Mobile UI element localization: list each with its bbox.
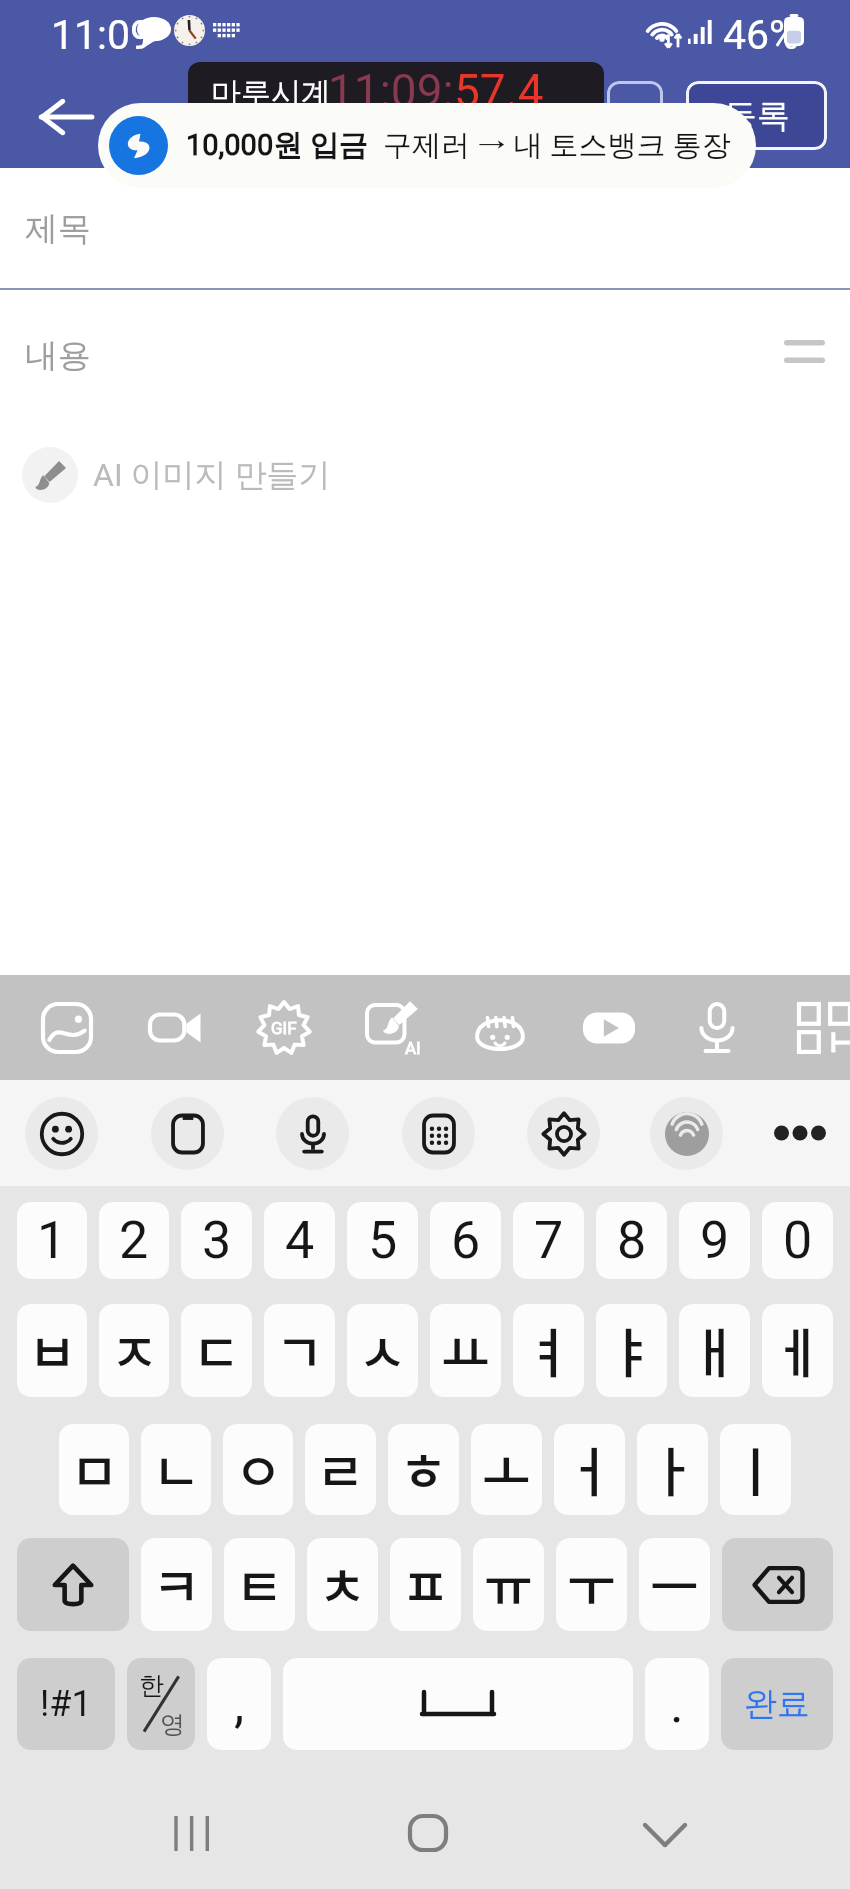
staticText: ㄷ bbox=[192, 1312, 241, 1389]
button[interactable]: ㄱ bbox=[264, 1304, 335, 1397]
button[interactable]: Spotify bbox=[632, 1080, 740, 1186]
staticText: 4 bbox=[285, 1210, 315, 1271]
staticText: ㅗ bbox=[482, 1431, 531, 1508]
button[interactable]: 1 bbox=[17, 1202, 87, 1279]
button[interactable]: Recent apps bbox=[131, 1788, 251, 1878]
button[interactable]: . bbox=[645, 1658, 709, 1750]
staticText: ㅠ bbox=[484, 1546, 533, 1623]
button[interactable]: Emoji bbox=[7, 1080, 115, 1186]
button[interactable]: Clipboard bbox=[133, 1080, 241, 1186]
button[interactable]: ㅐ bbox=[679, 1304, 750, 1397]
button[interactable]: 2 bbox=[99, 1202, 169, 1279]
staticText: 제목 bbox=[25, 208, 91, 250]
button[interactable]: 등록 bbox=[686, 81, 827, 150]
staticText: 10,000원 입금 bbox=[186, 127, 368, 164]
button[interactable]: 4 bbox=[264, 1202, 335, 1279]
button[interactable]: , bbox=[207, 1658, 271, 1750]
staticText: ㄱ bbox=[275, 1312, 324, 1389]
button[interactable]: ㅑ bbox=[596, 1304, 667, 1397]
button[interactable]: ㅠ bbox=[473, 1538, 544, 1631]
staticText: ㅣ bbox=[731, 1431, 780, 1508]
button[interactable]: Menu bbox=[607, 81, 663, 150]
button[interactable]: ㅕ bbox=[513, 1304, 584, 1397]
button[interactable]: 6 bbox=[430, 1202, 501, 1279]
button[interactable]: 0 bbox=[762, 1202, 833, 1279]
button[interactable]: ㅋ bbox=[141, 1538, 212, 1631]
button[interactable]: ㅁ bbox=[59, 1424, 129, 1515]
button[interactable]: Voice input bbox=[258, 1080, 366, 1186]
button[interactable]: Voice bbox=[663, 975, 771, 1080]
staticText: 8 bbox=[617, 1210, 647, 1271]
button[interactable]: !#1 bbox=[17, 1658, 115, 1750]
button[interactable]: Keyboard layout bbox=[384, 1080, 492, 1186]
staticText: 46% bbox=[723, 11, 800, 59]
staticText: ㅊ bbox=[318, 1546, 367, 1623]
staticText: ㅑ bbox=[607, 1312, 656, 1389]
button[interactable]: ㅣ bbox=[720, 1424, 791, 1515]
staticText: ㅏ bbox=[648, 1431, 697, 1508]
button[interactable]: Sticker bbox=[446, 975, 554, 1080]
button[interactable]: ㅔ bbox=[762, 1304, 833, 1397]
button[interactable]: More options bbox=[746, 1080, 850, 1186]
button[interactable]: ㅈ bbox=[99, 1304, 169, 1397]
button[interactable]: Image bbox=[13, 975, 121, 1080]
button[interactable]: ㅏ bbox=[637, 1424, 708, 1515]
button[interactable]: 한 bbox=[127, 1658, 195, 1750]
staticText: ㅛ bbox=[441, 1312, 490, 1389]
button[interactable]: ㅎ bbox=[388, 1424, 459, 1515]
button[interactable]: ㄷ bbox=[181, 1304, 252, 1397]
button[interactable]: ㅓ bbox=[554, 1424, 625, 1515]
button[interactable]: Home bbox=[368, 1788, 488, 1878]
button[interactable]: Apps bbox=[771, 975, 850, 1080]
button[interactable]: 완료 bbox=[721, 1658, 833, 1750]
button[interactable]: YouTube bbox=[555, 975, 663, 1080]
button[interactable]: Space bbox=[283, 1658, 633, 1750]
button[interactable]: 3 bbox=[181, 1202, 252, 1279]
staticText: ㅎ bbox=[399, 1431, 448, 1508]
staticText: ㅍ bbox=[401, 1546, 450, 1623]
staticText: 11:09: bbox=[328, 64, 454, 118]
button[interactable]: Text formatting bbox=[772, 316, 836, 386]
button[interactable]: Back bbox=[24, 75, 108, 159]
button[interactable]: Backspace bbox=[722, 1538, 833, 1631]
staticText: ㅋ bbox=[152, 1546, 201, 1623]
button[interactable]: ㄹ bbox=[305, 1424, 376, 1515]
staticText: 5 bbox=[368, 1210, 398, 1271]
button[interactable]: ㅌ bbox=[224, 1538, 295, 1631]
staticText: ㅁ bbox=[70, 1431, 119, 1508]
staticText: 마루시계 bbox=[211, 74, 331, 112]
button[interactable]: Settings bbox=[509, 1080, 617, 1186]
button[interactable]: 7 bbox=[513, 1202, 584, 1279]
staticText: ㅂ bbox=[28, 1312, 77, 1389]
staticText: ㅜ bbox=[567, 1546, 616, 1623]
staticText: 완료 bbox=[744, 1683, 810, 1725]
staticText: ㅌ bbox=[235, 1546, 284, 1623]
button[interactable]: 10,000원 입금 bbox=[98, 103, 756, 188]
button[interactable]: ㅗ bbox=[471, 1424, 542, 1515]
button[interactable]: ㅇ bbox=[223, 1424, 293, 1515]
button[interactable]: ㄴ bbox=[141, 1424, 211, 1515]
button[interactable]: AI 이미지 만들기 bbox=[22, 435, 331, 515]
button[interactable]: Hide keyboard bbox=[605, 1790, 725, 1880]
button[interactable]: Video bbox=[121, 975, 229, 1080]
button[interactable]: GIF bbox=[230, 975, 338, 1080]
staticText: ㅔ bbox=[773, 1312, 822, 1389]
button[interactable]: 5 bbox=[347, 1202, 418, 1279]
button[interactable]: ㅛ bbox=[430, 1304, 501, 1397]
button[interactable]: ㅡ bbox=[639, 1538, 710, 1631]
button[interactable]: ㅊ bbox=[307, 1538, 378, 1631]
button[interactable]: ㅜ bbox=[556, 1538, 627, 1631]
button[interactable]: AI drawing bbox=[338, 975, 446, 1080]
button[interactable]: ㅍ bbox=[390, 1538, 461, 1631]
button[interactable]: Shift bbox=[17, 1538, 129, 1631]
staticText: 0 bbox=[783, 1210, 813, 1271]
staticText: GIF bbox=[271, 1018, 297, 1038]
button[interactable]: 9 bbox=[679, 1202, 750, 1279]
staticText: ㅅ bbox=[358, 1312, 407, 1389]
button[interactable]: ㅅ bbox=[347, 1304, 418, 1397]
staticText: ㅈ bbox=[110, 1312, 159, 1389]
button[interactable]: 8 bbox=[596, 1202, 667, 1279]
button[interactable]: ㅂ bbox=[17, 1304, 87, 1397]
staticText: 구제러 → 내 토스뱅크 통장 bbox=[383, 127, 731, 164]
staticText: 11:09 bbox=[51, 11, 154, 59]
